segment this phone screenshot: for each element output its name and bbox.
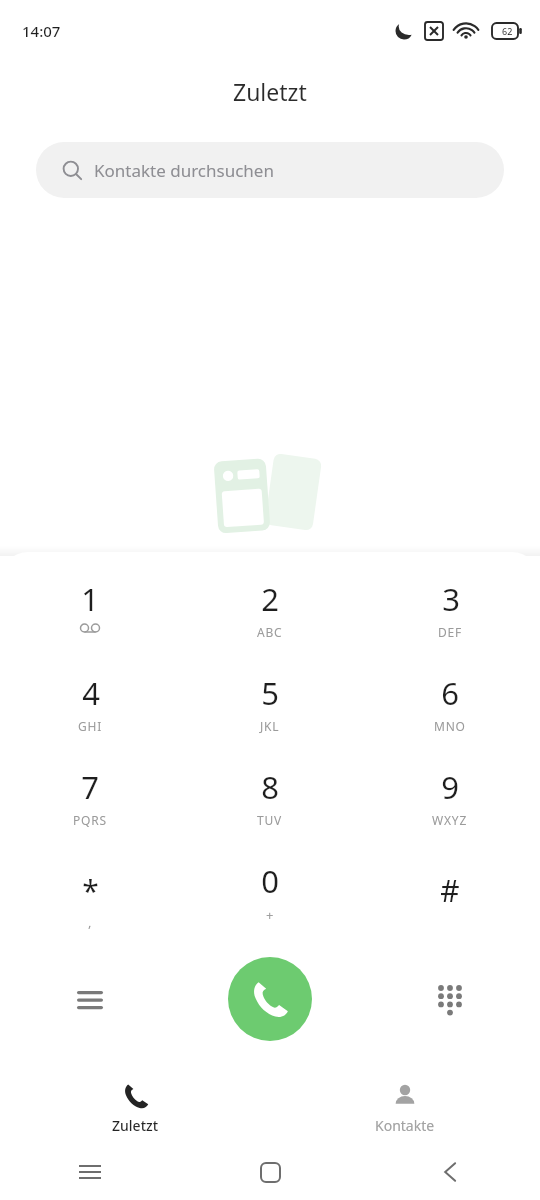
staticText: +	[266, 906, 275, 924]
staticText: DEF	[438, 624, 463, 640]
staticText: Zuletzt	[233, 76, 307, 107]
staticText: Kontakte durchsuchen	[94, 159, 274, 182]
button[interactable]: Recents	[0, 1144, 180, 1200]
staticText: 4	[82, 672, 100, 714]
staticText: 62	[502, 25, 513, 37]
button[interactable]: 5	[180, 668, 360, 762]
staticText: GHI	[78, 718, 103, 734]
staticText: WXYZ	[432, 812, 468, 828]
button[interactable]: 0	[180, 856, 360, 950]
button[interactable]: 3	[360, 574, 540, 668]
button[interactable]: Back	[360, 1144, 540, 1200]
button[interactable]: 4	[0, 668, 180, 762]
button[interactable]: Home	[180, 1144, 360, 1200]
staticText: 7	[81, 766, 99, 808]
button[interactable]: Call	[228, 957, 312, 1041]
button[interactable]: #	[360, 856, 540, 950]
staticText: 14:07	[22, 21, 61, 41]
button[interactable]: 1	[0, 574, 180, 668]
staticText: 2	[261, 578, 279, 620]
button[interactable]: 2	[180, 574, 360, 668]
button[interactable]: *	[0, 856, 180, 950]
staticText: 9	[441, 766, 459, 808]
staticText: 8	[261, 766, 279, 808]
staticText: 1	[81, 578, 99, 620]
staticText: Zuletzt	[112, 1116, 159, 1135]
staticText: Kontakte	[375, 1116, 435, 1135]
staticText: #	[440, 870, 460, 911]
button[interactable]: Kontakte	[270, 1070, 540, 1148]
button[interactable]: 7	[0, 762, 180, 856]
button[interactable]: 8	[180, 762, 360, 856]
staticText: ABC	[257, 624, 283, 640]
staticText: TUV	[257, 812, 283, 828]
staticText: 5	[261, 672, 279, 714]
button[interactable]: Keypad	[360, 950, 540, 1048]
staticText: 6	[441, 672, 459, 714]
staticText: MNO	[434, 718, 466, 734]
button[interactable]: Zuletzt	[0, 1070, 270, 1148]
staticText: PQRS	[73, 812, 107, 828]
staticText: ,	[88, 913, 93, 931]
button[interactable]: 6	[360, 668, 540, 762]
staticText: JKL	[260, 718, 280, 734]
button[interactable]: 9	[360, 762, 540, 856]
button[interactable]: Menu	[0, 950, 180, 1048]
button[interactable]: Kontakte durchsuchen	[36, 142, 504, 198]
staticText: *	[82, 870, 99, 911]
staticText: 3	[442, 578, 460, 620]
staticText: 0	[261, 860, 279, 902]
